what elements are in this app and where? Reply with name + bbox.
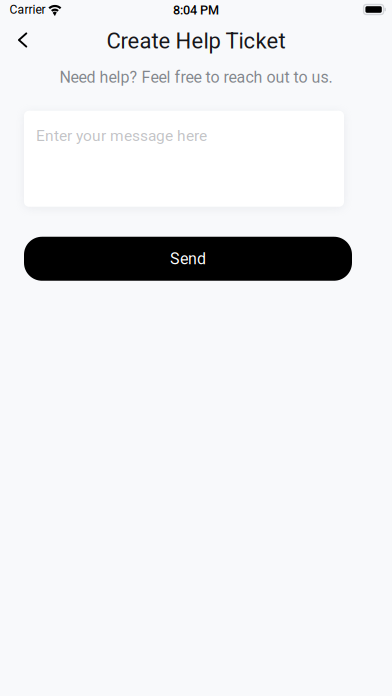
- staticText: Create Help Ticket: [106, 28, 285, 54]
- staticText: Enter your message here: [36, 127, 207, 145]
- staticText: Need help? Feel free to reach out to us.: [59, 68, 332, 87]
- staticText: Send: [170, 249, 206, 268]
- staticText: Carrier: [10, 2, 46, 17]
- button[interactable]: Back: [0, 26, 41, 55]
- button[interactable]: Send: [24, 237, 352, 281]
- staticText: 8:04 PM: [173, 3, 219, 18]
